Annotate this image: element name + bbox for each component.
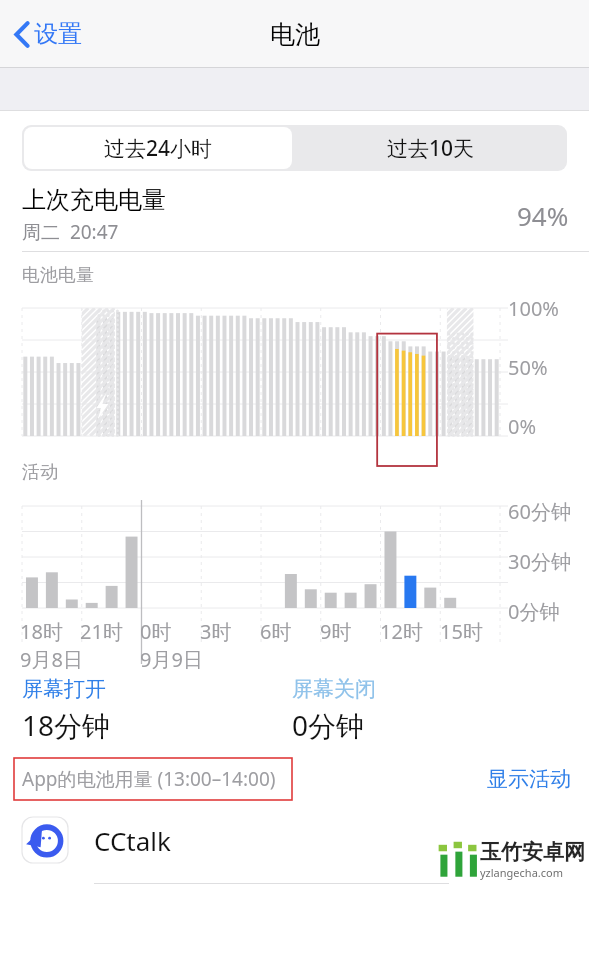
staticText: 94% [517,198,569,233]
staticText: 6时 [260,618,292,645]
staticText: 3时 [200,618,232,645]
button[interactable]: 显示活动 [483,762,575,796]
staticText: 过去10天 [387,134,475,163]
staticText: 60分钟 [508,498,571,525]
staticText: 50% [508,354,548,381]
button[interactable]: 过去24小时 [24,127,292,169]
button[interactable]: 设置 [8,11,88,57]
staticText: 18分钟 [22,706,111,744]
staticText: 玉竹安卓网 [480,839,585,865]
staticText: 100% [508,295,559,322]
staticText: 15时 [440,618,483,645]
staticText: App的电池用量 (13:00–14:00) [22,766,276,792]
staticText: 0分钟 [292,706,365,744]
staticText: 0时 [140,618,172,645]
staticText: 30分钟 [508,548,571,575]
staticText: 电池电量 [22,264,94,287]
staticText: 电池 [270,19,320,50]
button[interactable]: 过去10天 [294,125,567,171]
staticText: 12时 [380,618,423,645]
staticText: CCtalk [94,823,171,858]
staticText: 活动 [22,461,58,484]
staticText: 周二 20:47 [22,219,119,245]
staticText: 上次充电电量 [22,185,166,215]
staticText: 屏幕打开 [22,676,106,702]
staticText: 屏幕关闭 [292,676,376,702]
staticText: 18时 [20,618,63,645]
staticText: 9月9日 [140,646,203,673]
staticText: 过去24小时 [104,134,213,163]
staticText: 9月8日 [20,646,83,673]
staticText: 9时 [320,618,352,645]
staticText: 0% [508,413,537,440]
staticText: yzlangecha.com [480,865,563,880]
staticText: 设置 [34,19,82,49]
staticText: 0分钟 [508,598,560,625]
button[interactable]: CCtalk [0,804,589,884]
staticText: 21时 [80,618,123,645]
